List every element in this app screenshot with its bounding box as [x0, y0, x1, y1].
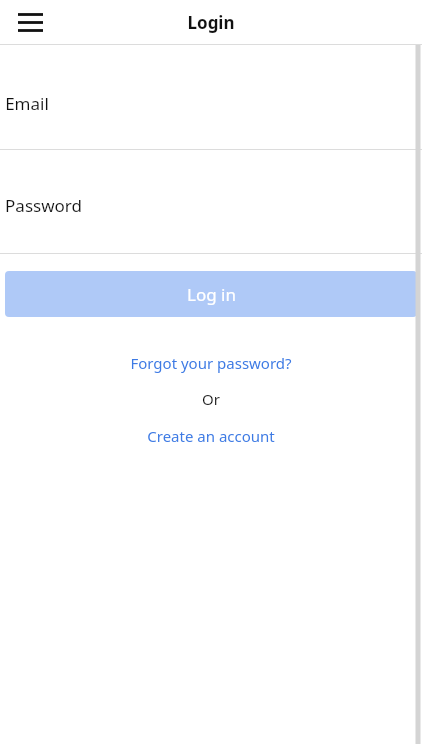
- staticText: Log in: [187, 283, 236, 306]
- button[interactable]: Email: [0, 92, 422, 114]
- staticText: Create an account: [147, 426, 275, 446]
- staticText: Or: [202, 389, 220, 409]
- button[interactable]: Open navigation menu: [9, 6, 51, 38]
- button[interactable]: Log in: [5, 271, 417, 317]
- staticText: Password: [5, 194, 82, 216]
- button[interactable]: Password: [0, 194, 422, 216]
- staticText: Forgot your password?: [130, 353, 292, 373]
- staticText: Login: [187, 11, 235, 34]
- button[interactable]: Create an account: [0, 425, 422, 446]
- staticText: Email: [5, 92, 49, 114]
- button[interactable]: Forgot your password?: [0, 352, 422, 373]
